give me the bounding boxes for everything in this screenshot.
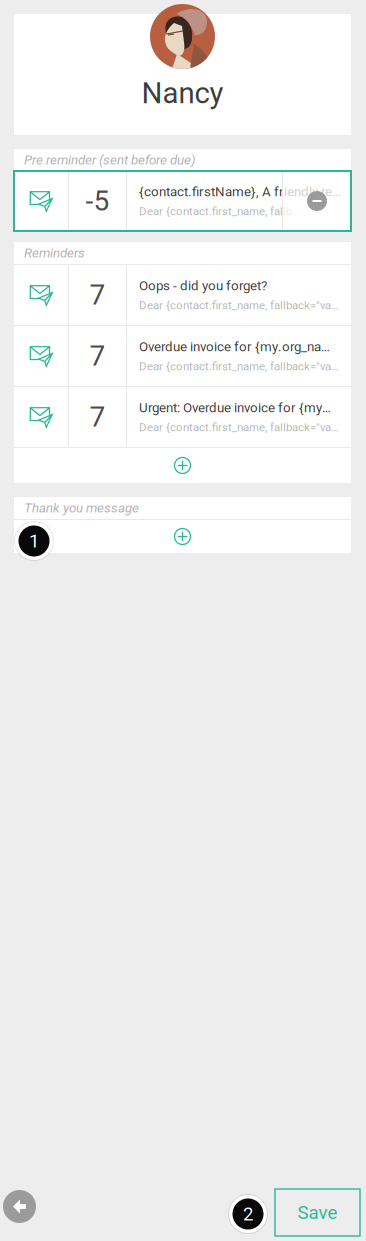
staticText: 7: [89, 401, 105, 433]
staticText: {contact.firstName}, A friendly re…: [139, 184, 341, 200]
button[interactable]: -5: [14, 171, 351, 231]
button[interactable]: 7: [14, 326, 351, 386]
staticText: 7: [89, 279, 105, 311]
button[interactable]: Remove: [307, 191, 327, 211]
staticText: Reminders: [24, 245, 85, 261]
button[interactable]: Back: [3, 1190, 36, 1223]
staticText: Dear {contact.first_name, fallb…: [139, 205, 300, 218]
staticText: Dear {contact.first_name, fallback="va…: [139, 360, 339, 373]
staticText: Nancy: [141, 76, 223, 110]
staticText: Urgent: Overdue invoice for {my…: [139, 400, 331, 416]
staticText: 2: [243, 1203, 253, 1225]
staticText: 7: [89, 340, 105, 372]
button[interactable]: Add: [14, 520, 351, 553]
staticText: 1: [29, 530, 39, 552]
button[interactable]: Add: [14, 448, 351, 483]
staticText: -5: [85, 185, 109, 217]
staticText: Dear {contact.first_name, fallback="va…: [139, 299, 339, 312]
button[interactable]: 7: [14, 387, 351, 447]
staticText: Save: [297, 1202, 337, 1223]
staticText: Pre reminder (sent before due): [24, 152, 196, 168]
button[interactable]: 7: [14, 265, 351, 325]
button[interactable]: Save: [275, 1189, 360, 1236]
staticText: Thank you message: [24, 500, 139, 516]
staticText: Oops - did you forget?: [139, 278, 267, 294]
staticText: Overdue invoice for {my.org_na…: [139, 339, 330, 355]
staticText: Dear {contact.first_name, fallback="va…: [139, 421, 339, 434]
